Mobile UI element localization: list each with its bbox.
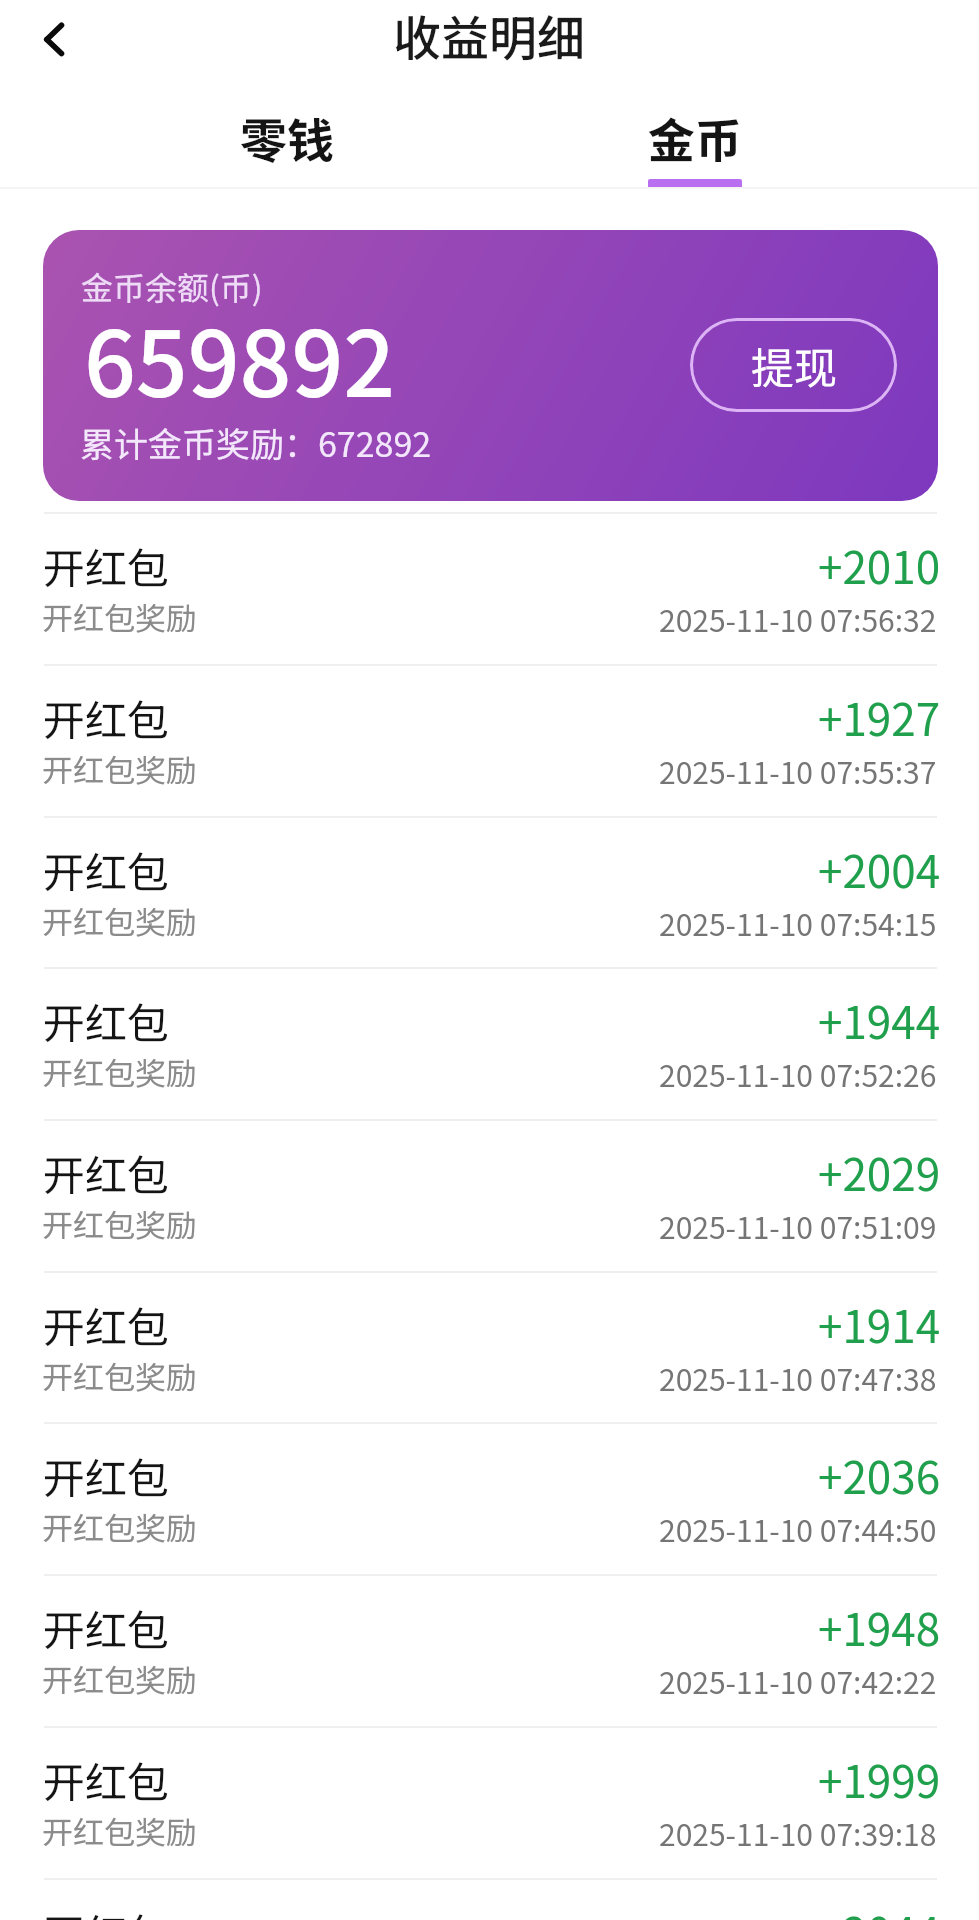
button[interactable]: 开红包 — [0, 1121, 979, 1271]
staticText: 金币余额(币) — [81, 263, 263, 309]
staticText: 开红包奖励 — [42, 746, 197, 791]
staticText: 开红包 — [43, 1294, 170, 1355]
button[interactable]: 金币 — [585, 88, 805, 186]
staticText: 开红包奖励 — [42, 1049, 197, 1094]
staticText: 2025-11-10 07:47:38 — [659, 1356, 937, 1399]
staticText: 开红包奖励 — [42, 1353, 197, 1398]
staticText: 零钱 — [240, 103, 334, 171]
staticText: +2036 — [818, 1443, 941, 1507]
button[interactable]: 开红包 — [0, 969, 979, 1119]
staticText: 2025-11-10 07:42:22 — [659, 1659, 937, 1702]
staticText: 提现 — [751, 334, 837, 396]
staticText: +1948 — [818, 1595, 941, 1659]
button[interactable]: 开红包 — [0, 514, 979, 664]
staticText: 2025-11-10 07:56:32 — [659, 597, 937, 640]
staticText: +1999 — [818, 1747, 941, 1811]
staticText: +2004 — [818, 837, 941, 901]
staticText: 开红包奖励 — [42, 1201, 197, 1246]
staticText: 开红包奖励 — [42, 898, 197, 943]
button[interactable]: 开红包 — [0, 666, 979, 816]
button[interactable]: 提现 — [690, 318, 897, 412]
button[interactable]: 开红包 — [0, 1424, 979, 1574]
staticText: +2010 — [818, 533, 941, 597]
staticText: 开红包奖励 — [42, 1808, 197, 1853]
staticText: +1927 — [818, 685, 941, 749]
staticText: +2044 — [818, 1899, 941, 1920]
button[interactable]: 开红包 — [0, 1728, 979, 1878]
staticText: 2025-11-10 07:52:26 — [659, 1052, 937, 1095]
staticText: 开红包 — [43, 990, 170, 1051]
staticText: 开红包 — [43, 1597, 170, 1658]
button[interactable]: 开红包 — [0, 1273, 979, 1423]
staticText: 累计金币奖励：672892 — [80, 418, 432, 467]
staticText: 2025-11-10 07:55:37 — [659, 749, 937, 792]
staticText: 659892 — [84, 291, 396, 423]
staticText: 开红包奖励 — [42, 1504, 197, 1549]
staticText: 开红包 — [43, 535, 170, 596]
staticText: +2029 — [818, 1140, 941, 1204]
button[interactable]: 零钱 — [177, 88, 397, 186]
staticText: 2025-11-10 07:54:15 — [659, 901, 937, 944]
staticText: 收益明细 — [393, 0, 586, 70]
button[interactable]: Back — [0, 0, 108, 80]
staticText: 开红包 — [43, 839, 170, 900]
staticText: 开红包 — [43, 687, 170, 748]
staticText: 开红包 — [43, 1901, 170, 1920]
staticText: 开红包 — [43, 1749, 170, 1810]
staticText: 金币 — [648, 103, 742, 171]
staticText: 2025-11-10 07:39:18 — [659, 1811, 937, 1854]
staticText: +1914 — [818, 1292, 941, 1356]
staticText: 2025-11-10 07:51:09 — [659, 1204, 937, 1247]
button[interactable]: 开红包 — [0, 1576, 979, 1726]
button[interactable]: 开红包 — [0, 818, 979, 968]
staticText: 2025-11-10 07:44:50 — [659, 1507, 937, 1550]
staticText: 开红包奖励 — [42, 594, 197, 639]
staticText: 开红包 — [43, 1142, 170, 1203]
button[interactable]: 开红包 — [0, 1880, 979, 1920]
staticText: +1944 — [818, 988, 941, 1052]
staticText: 开红包奖励 — [42, 1656, 197, 1701]
staticText: 开红包 — [43, 1445, 170, 1506]
